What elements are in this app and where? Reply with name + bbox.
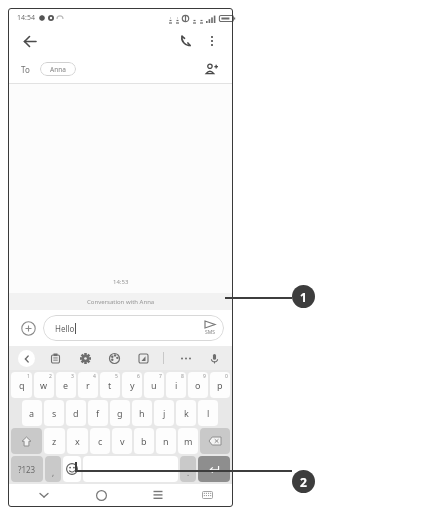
button[interactable]: i — [166, 372, 186, 398]
staticText: Conversation with Anna — [87, 298, 155, 306]
button[interactable]: c — [90, 428, 110, 454]
staticText: q — [19, 379, 25, 391]
button[interactable]: Voice input — [205, 349, 223, 367]
button[interactable]: f — [88, 400, 108, 426]
button[interactable]: m — [178, 428, 198, 454]
staticText: 4 — [93, 373, 96, 380]
button[interactable]: a — [22, 400, 42, 426]
staticText: u — [151, 379, 157, 391]
staticText: 1 — [27, 373, 30, 380]
staticText: z — [52, 435, 57, 447]
staticText: 9 — [203, 373, 206, 380]
staticText: y — [130, 379, 135, 391]
button[interactable]: Recent apps — [148, 485, 168, 505]
staticText: k — [184, 407, 189, 419]
button[interactable]: Clipboard — [46, 349, 64, 367]
button[interactable]: s — [44, 400, 64, 426]
button[interactable]: o — [188, 372, 208, 398]
staticText: 6 — [137, 373, 140, 380]
button[interactable]: Hide keyboard — [34, 485, 54, 505]
staticText: 7 — [159, 373, 162, 380]
staticText: 14:53 — [113, 278, 129, 286]
button[interactable]: Collapse toolbar — [18, 350, 35, 367]
button[interactable]: w — [34, 372, 54, 398]
staticText: l — [207, 407, 210, 419]
staticText: v — [120, 435, 125, 447]
staticText: o — [195, 379, 201, 391]
staticText: 3 — [71, 373, 74, 380]
button[interactable]: Attach — [17, 317, 39, 339]
button[interactable]: Send SMS — [202, 320, 218, 336]
button[interactable]: v — [112, 428, 132, 454]
staticText: w — [40, 379, 48, 391]
staticText: 0 — [225, 373, 228, 380]
staticText: p — [217, 379, 223, 391]
staticText: m — [184, 435, 193, 447]
staticText: 14:54 — [17, 13, 35, 23]
staticText: h — [139, 407, 145, 419]
button[interactable]: z — [44, 428, 65, 454]
staticText: 8 — [181, 373, 184, 380]
button[interactable]: k — [176, 400, 196, 426]
staticText: g — [117, 407, 123, 419]
button[interactable]: , — [45, 456, 61, 482]
staticText: ?123 — [18, 464, 36, 475]
staticText: t — [108, 379, 112, 391]
button[interactable]: q — [11, 372, 32, 398]
staticText: x — [75, 435, 80, 447]
button[interactable]: Settings — [76, 349, 94, 367]
button[interactable]: Hello — [43, 315, 224, 341]
button[interactable]: g — [110, 400, 130, 426]
button[interactable]: l — [198, 400, 218, 426]
button[interactable]: Call — [176, 31, 196, 51]
staticText: Anna — [50, 65, 66, 74]
button[interactable]: Switch keyboard — [197, 485, 217, 505]
button[interactable]: Themes — [105, 349, 123, 367]
button[interactable]: Back — [19, 31, 39, 51]
button[interactable]: u — [144, 372, 164, 398]
button[interactable]: . — [180, 456, 196, 482]
button[interactable]: ?123 — [11, 456, 43, 482]
staticText: Hello — [55, 323, 75, 334]
button[interactable]: Backspace — [200, 428, 230, 454]
button[interactable]: y — [122, 372, 142, 398]
staticText: e — [63, 379, 69, 391]
staticText: 2 — [300, 474, 307, 490]
staticText: r — [86, 379, 90, 391]
button[interactable]: Enter — [198, 456, 230, 482]
staticText: 5 — [115, 373, 118, 380]
button[interactable]: h — [132, 400, 152, 426]
staticText: . — [187, 467, 190, 478]
staticText: 2 — [49, 373, 52, 380]
button[interactable]: Space — [83, 456, 178, 482]
staticText: j — [163, 407, 166, 419]
staticText: To — [21, 64, 30, 75]
staticText: f — [96, 407, 100, 419]
button[interactable]: More options — [202, 31, 222, 51]
staticText: d — [73, 407, 79, 419]
staticText: b — [141, 435, 147, 447]
button[interactable]: n — [156, 428, 176, 454]
button[interactable]: r — [78, 372, 98, 398]
button[interactable]: t — [100, 372, 120, 398]
button[interactable]: Shift — [11, 428, 42, 454]
button[interactable]: d — [66, 400, 86, 426]
staticText: a — [29, 407, 35, 419]
staticText: i — [175, 379, 178, 391]
button[interactable]: e — [56, 372, 76, 398]
staticText: s — [52, 407, 57, 419]
button[interactable]: Sticker — [134, 349, 152, 367]
button[interactable]: Anna — [40, 62, 76, 76]
button[interactable]: x — [67, 428, 88, 454]
staticText: 1 — [300, 289, 307, 305]
staticText: c — [98, 435, 103, 447]
button[interactable]: b — [134, 428, 154, 454]
button[interactable]: p — [210, 372, 230, 398]
staticText: SMS — [205, 329, 216, 336]
button[interactable]: Add contact — [202, 60, 220, 78]
button[interactable]: j — [154, 400, 174, 426]
button[interactable]: Emoji — [63, 456, 81, 482]
button[interactable]: More — [176, 349, 194, 367]
button[interactable]: Home — [91, 485, 111, 505]
staticText: , — [52, 467, 55, 478]
